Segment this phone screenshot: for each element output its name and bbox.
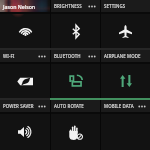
button[interactable]: BRIGHTNESS	[51, 0, 100, 48]
staticText: WI-FI	[3, 53, 15, 59]
staticText: AUTO ROTATE	[54, 103, 84, 109]
other: Sound	[18, 127, 33, 137]
staticText: BRIGHTNESS	[54, 3, 82, 9]
staticText: AIRPLANE MODE	[104, 53, 141, 59]
button[interactable]: WI-FI	[0, 50, 50, 98]
button[interactable]: POWER SAVER	[0, 100, 50, 150]
staticText: Jason Nelson	[3, 3, 36, 10]
other: Wi-Fi	[18, 26, 33, 36]
other: Mobile data	[120, 75, 132, 87]
button[interactable]: Jason Nelson	[0, 0, 50, 48]
button[interactable]: AUTO ROTATE	[51, 100, 100, 150]
other: Power saving	[17, 77, 33, 86]
other: Airplane mode	[119, 25, 132, 38]
button[interactable]: SETTINGS	[101, 0, 150, 48]
other: Blocking mode	[68, 125, 84, 140]
staticText: POWER SAVER	[3, 103, 34, 109]
button[interactable]: AIRPLANE MODE	[101, 50, 150, 98]
staticText: BLUETOOTH	[54, 53, 81, 59]
staticText: SETTINGS	[104, 3, 126, 9]
button[interactable]: BLUETOOTH	[51, 50, 100, 98]
other: Auto rotate	[69, 75, 83, 87]
staticText: MOBILE DATA	[104, 103, 134, 109]
button[interactable]: MOBILE DATA	[101, 100, 150, 150]
other: Bluetooth	[72, 25, 80, 38]
